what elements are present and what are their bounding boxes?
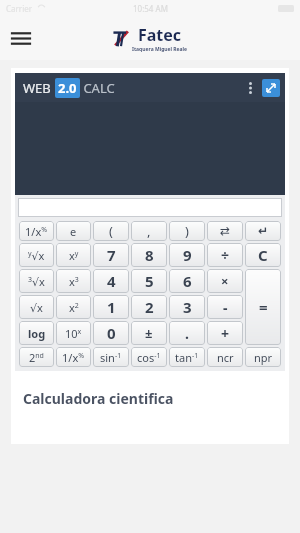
button[interactable]: (: [93, 221, 129, 241]
button[interactable]: More options: [242, 80, 258, 96]
button[interactable]: 2: [131, 295, 167, 319]
staticText: (: [109, 222, 113, 240]
button[interactable]: 0: [93, 321, 129, 345]
button[interactable]: ↵: [245, 221, 281, 241]
staticText: y√x: [28, 248, 45, 263]
button[interactable]: e: [56, 221, 91, 241]
button[interactable]: 6: [169, 269, 205, 293]
button[interactable]: =: [245, 269, 281, 345]
staticText: xy: [69, 248, 79, 263]
staticText: 5: [145, 271, 154, 291]
staticText: 6: [183, 271, 192, 291]
button[interactable]: 7: [93, 243, 129, 267]
staticText: .: [185, 324, 189, 343]
button[interactable]: Menu: [6, 23, 36, 53]
staticText: ÷: [221, 246, 230, 265]
staticText: 10:54 AM: [133, 3, 168, 14]
button[interactable]: tan-1: [169, 347, 205, 367]
staticText: CALC: [80, 79, 115, 97]
button[interactable]: 2nd: [19, 347, 54, 367]
staticText: 2.0: [58, 79, 77, 97]
staticText: 2: [145, 297, 154, 317]
button[interactable]: log: [19, 321, 54, 345]
staticText: ×: [221, 272, 229, 290]
button[interactable]: ÷: [207, 243, 243, 267]
staticText: 10x: [65, 326, 82, 341]
staticText: WEB: [23, 79, 55, 97]
staticText: 1: [107, 297, 116, 317]
staticText: √x: [30, 300, 43, 315]
button[interactable]: ×: [207, 269, 243, 293]
button[interactable]: 10x: [56, 321, 91, 345]
staticText: Fatec: [138, 24, 182, 46]
staticText: 3: [183, 297, 192, 317]
staticText: ↵: [258, 224, 269, 238]
staticText: 3√x: [28, 274, 45, 289]
staticText: 2nd: [29, 350, 44, 365]
staticText: npr: [254, 350, 273, 365]
button[interactable]: C: [245, 243, 281, 267]
button[interactable]: [18, 198, 282, 217]
button[interactable]: xy: [56, 243, 91, 267]
staticText: x3: [69, 274, 79, 289]
button[interactable]: 1/x%: [56, 347, 91, 367]
staticText: =: [259, 297, 268, 317]
staticText: +: [221, 324, 230, 343]
staticText: tan-1: [175, 350, 199, 365]
button[interactable]: sin-1: [93, 347, 129, 367]
button[interactable]: ⇄: [207, 221, 243, 241]
staticText: 8: [145, 245, 154, 265]
staticText: 1/x%: [25, 224, 48, 239]
staticText: x2: [69, 300, 79, 315]
staticText: cos-1: [137, 350, 161, 365]
staticText: sin-1: [100, 350, 122, 365]
staticText: Itaquera Miguel Reale: [132, 46, 188, 53]
button[interactable]: ,: [131, 221, 167, 241]
button[interactable]: y√x: [19, 243, 54, 267]
button[interactable]: 5: [131, 269, 167, 293]
staticText: ±: [145, 324, 153, 342]
button[interactable]: 8: [131, 243, 167, 267]
staticText: ,: [147, 222, 151, 240]
button[interactable]: x2: [56, 295, 91, 319]
staticText: log: [28, 326, 46, 341]
staticText: 4: [107, 271, 116, 291]
button[interactable]: ): [169, 221, 205, 241]
button[interactable]: 1: [93, 295, 129, 319]
staticText: ncr: [217, 350, 234, 365]
button[interactable]: 1/x%: [19, 221, 54, 241]
button[interactable]: 3√x: [19, 269, 54, 293]
staticText: C: [258, 245, 268, 265]
button[interactable]: 9: [169, 243, 205, 267]
staticText: ⇄: [220, 224, 231, 238]
staticText: Carrier: [6, 3, 33, 14]
button[interactable]: ncr: [207, 347, 243, 367]
button[interactable]: -: [207, 295, 243, 319]
staticText: ): [185, 222, 189, 240]
staticText: e: [70, 224, 77, 239]
staticText: 9: [183, 245, 192, 265]
staticText: 1/x%: [62, 350, 85, 365]
button[interactable]: 3: [169, 295, 205, 319]
staticText: 0: [107, 323, 116, 343]
button[interactable]: +: [207, 321, 243, 345]
button[interactable]: cos-1: [131, 347, 167, 367]
staticText: 7: [107, 245, 116, 265]
button[interactable]: ±: [131, 321, 167, 345]
button[interactable]: Expand: [262, 79, 280, 97]
button[interactable]: npr: [245, 347, 281, 367]
button[interactable]: .: [169, 321, 205, 345]
button[interactable]: 4: [93, 269, 129, 293]
button[interactable]: x3: [56, 269, 91, 293]
button[interactable]: √x: [19, 295, 54, 319]
staticText: Calculadora cientifica: [23, 389, 174, 408]
staticText: -: [223, 298, 228, 317]
